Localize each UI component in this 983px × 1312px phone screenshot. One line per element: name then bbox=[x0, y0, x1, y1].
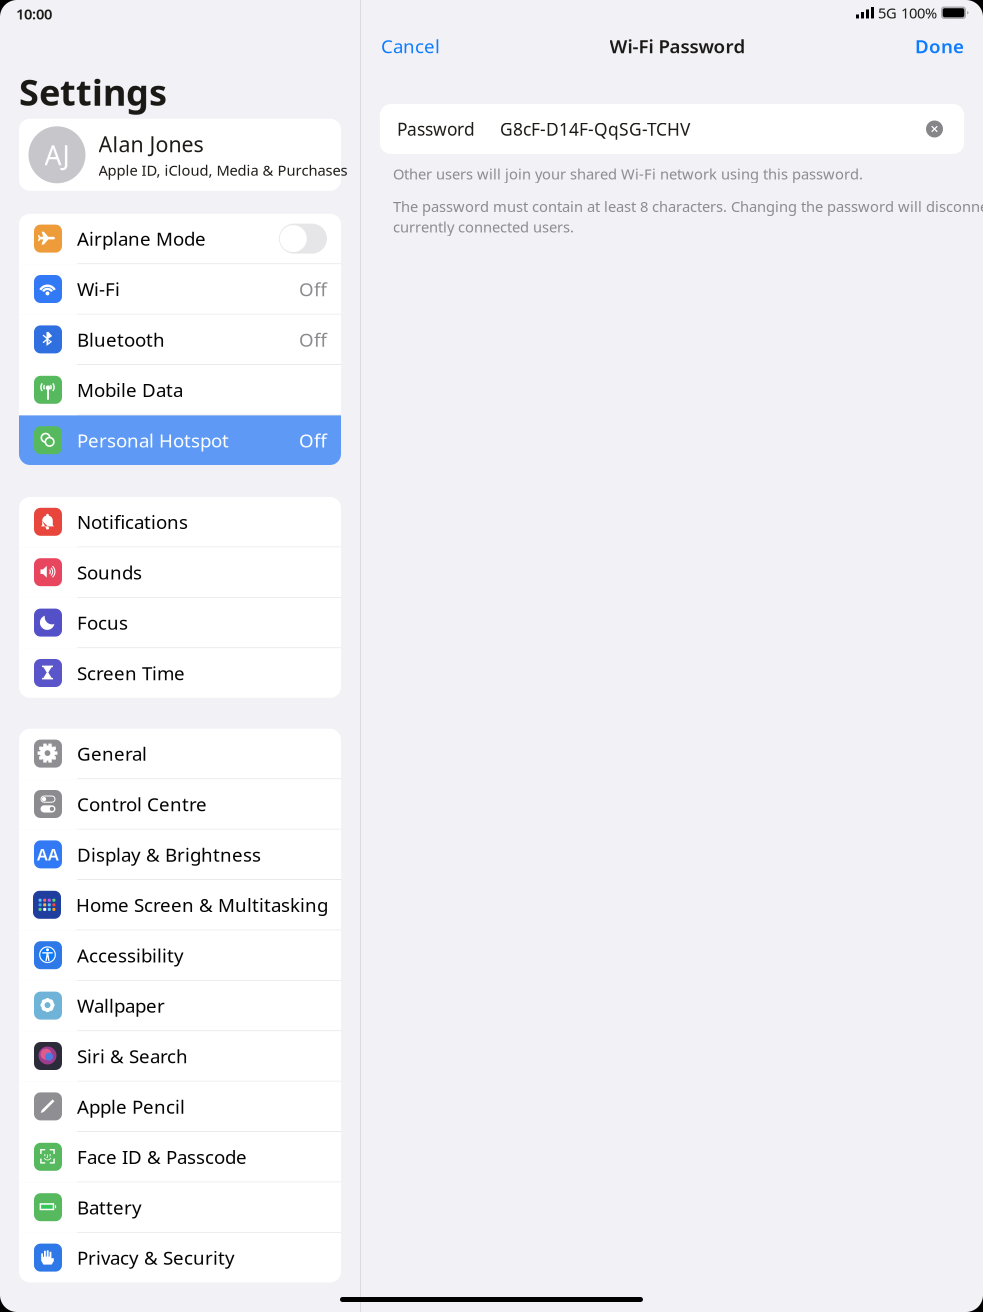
staticText: Password bbox=[397, 117, 475, 140]
staticText: Wallpaper bbox=[77, 993, 165, 1018]
staticText: Wi-Fi Password bbox=[609, 34, 745, 58]
button[interactable]: Home Screen & Multitasking bbox=[18, 880, 342, 930]
staticText: General bbox=[77, 741, 147, 766]
button[interactable]: Done bbox=[915, 34, 964, 58]
staticText: Screen Time bbox=[77, 661, 185, 685]
staticText: Other users will join your shared Wi-Fi … bbox=[393, 164, 863, 183]
button[interactable]: Mobile Data bbox=[19, 365, 341, 415]
staticText: Off bbox=[299, 428, 327, 453]
button[interactable]: Notifications bbox=[19, 497, 341, 547]
staticText: Off bbox=[299, 327, 327, 352]
staticText: Off bbox=[299, 277, 327, 301]
staticText: AJ bbox=[44, 137, 69, 172]
staticText: Focus bbox=[77, 610, 128, 635]
staticText: Airplane Mode bbox=[77, 226, 206, 251]
button[interactable]: Accessibility bbox=[19, 930, 341, 981]
staticText: Siri & Search bbox=[77, 1044, 188, 1068]
button[interactable]: Focus bbox=[19, 598, 341, 648]
staticText: Wi-Fi bbox=[77, 277, 120, 301]
button[interactable]: General bbox=[19, 729, 341, 779]
button[interactable]: Face ID & Passcode bbox=[19, 1132, 341, 1182]
button[interactable]: Sounds bbox=[19, 547, 341, 598]
button[interactable]: Wallpaper bbox=[19, 981, 341, 1031]
button[interactable]: Bluetooth bbox=[19, 315, 341, 365]
button[interactable]: Battery bbox=[19, 1182, 341, 1233]
button[interactable]: Cancel bbox=[381, 34, 440, 58]
button[interactable]: AA bbox=[19, 830, 341, 880]
button[interactable]: Control Centre bbox=[19, 779, 341, 830]
staticText: AA bbox=[37, 844, 59, 865]
button[interactable]: AJ bbox=[19, 119, 341, 191]
staticText: Sounds bbox=[77, 560, 142, 585]
staticText: Done bbox=[915, 34, 964, 58]
staticText: Home Screen & Multitasking bbox=[76, 892, 328, 917]
staticText: 10:00 bbox=[16, 4, 52, 23]
button[interactable]: Wi-Fi bbox=[19, 264, 341, 315]
button[interactable]: Clear password bbox=[926, 120, 943, 137]
staticText: Personal Hotspot bbox=[77, 428, 229, 453]
button[interactable]: Airplane Mode bbox=[19, 214, 341, 264]
staticText: 5G 100% bbox=[878, 3, 937, 22]
staticText: Settings bbox=[19, 68, 167, 116]
staticText: Apple Pencil bbox=[77, 1094, 185, 1119]
staticText: Face ID & Passcode bbox=[77, 1144, 247, 1169]
button[interactable]: Screen Time bbox=[19, 648, 341, 698]
staticText: Accessibility bbox=[77, 943, 184, 968]
staticText: Mobile Data bbox=[77, 377, 183, 402]
staticText: G8cF-D14F-QqSG-TCHV bbox=[500, 117, 690, 140]
button[interactable]: Siri & Search bbox=[19, 1031, 341, 1082]
staticText: Alan Jones bbox=[98, 130, 203, 158]
staticText: Apple ID, iCloud, Media & Purchases bbox=[98, 160, 347, 180]
staticText: The password must contain at least 8 cha… bbox=[393, 196, 983, 216]
staticText: Control Centre bbox=[77, 792, 207, 816]
staticText: Battery bbox=[77, 1195, 142, 1220]
button[interactable]: Personal Hotspot bbox=[19, 415, 341, 465]
button[interactable]: Privacy & Security bbox=[19, 1233, 341, 1282]
staticText: Notifications bbox=[77, 509, 188, 534]
button[interactable]: Apple Pencil bbox=[19, 1082, 341, 1132]
staticText: Bluetooth bbox=[77, 327, 165, 352]
staticText: currently connected users. bbox=[393, 217, 574, 236]
staticText: Cancel bbox=[381, 34, 440, 58]
staticText: Display & Brightness bbox=[77, 842, 261, 867]
staticText: Privacy & Security bbox=[77, 1245, 235, 1270]
